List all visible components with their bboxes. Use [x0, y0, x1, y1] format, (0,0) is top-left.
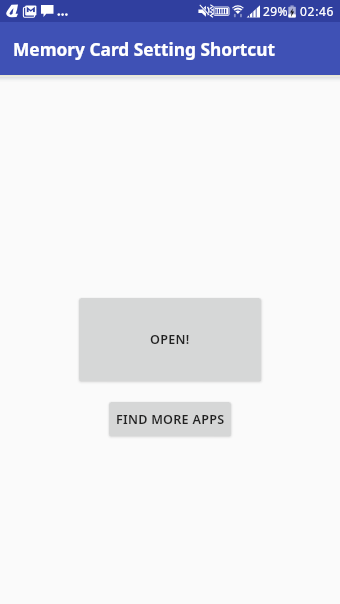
staticText: 02:46: [300, 3, 335, 19]
button[interactable]: FIND MORE APPS: [109, 402, 231, 436]
staticText: 29%: [263, 3, 288, 19]
staticText: Memory Card Setting Shortcut: [13, 38, 275, 62]
other: System status icons: [0, 0, 340, 22]
staticText: OPEN!: [150, 331, 190, 348]
staticText: FIND MORE APPS: [116, 411, 225, 428]
button[interactable]: OPEN!: [79, 298, 261, 381]
